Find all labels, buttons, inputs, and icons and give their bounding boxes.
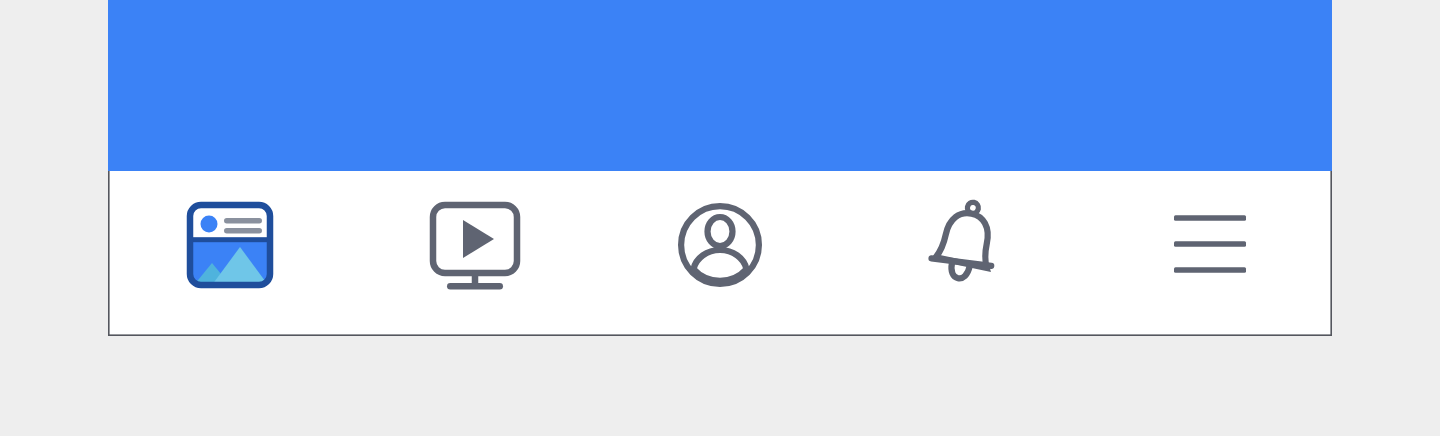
button[interactable]: Videos [352, 171, 597, 336]
button[interactable]: Menu [1087, 171, 1332, 336]
button[interactable]: Feed [108, 171, 352, 336]
button[interactable]: Notifications [842, 171, 1087, 336]
button[interactable]: Profile [597, 171, 842, 336]
